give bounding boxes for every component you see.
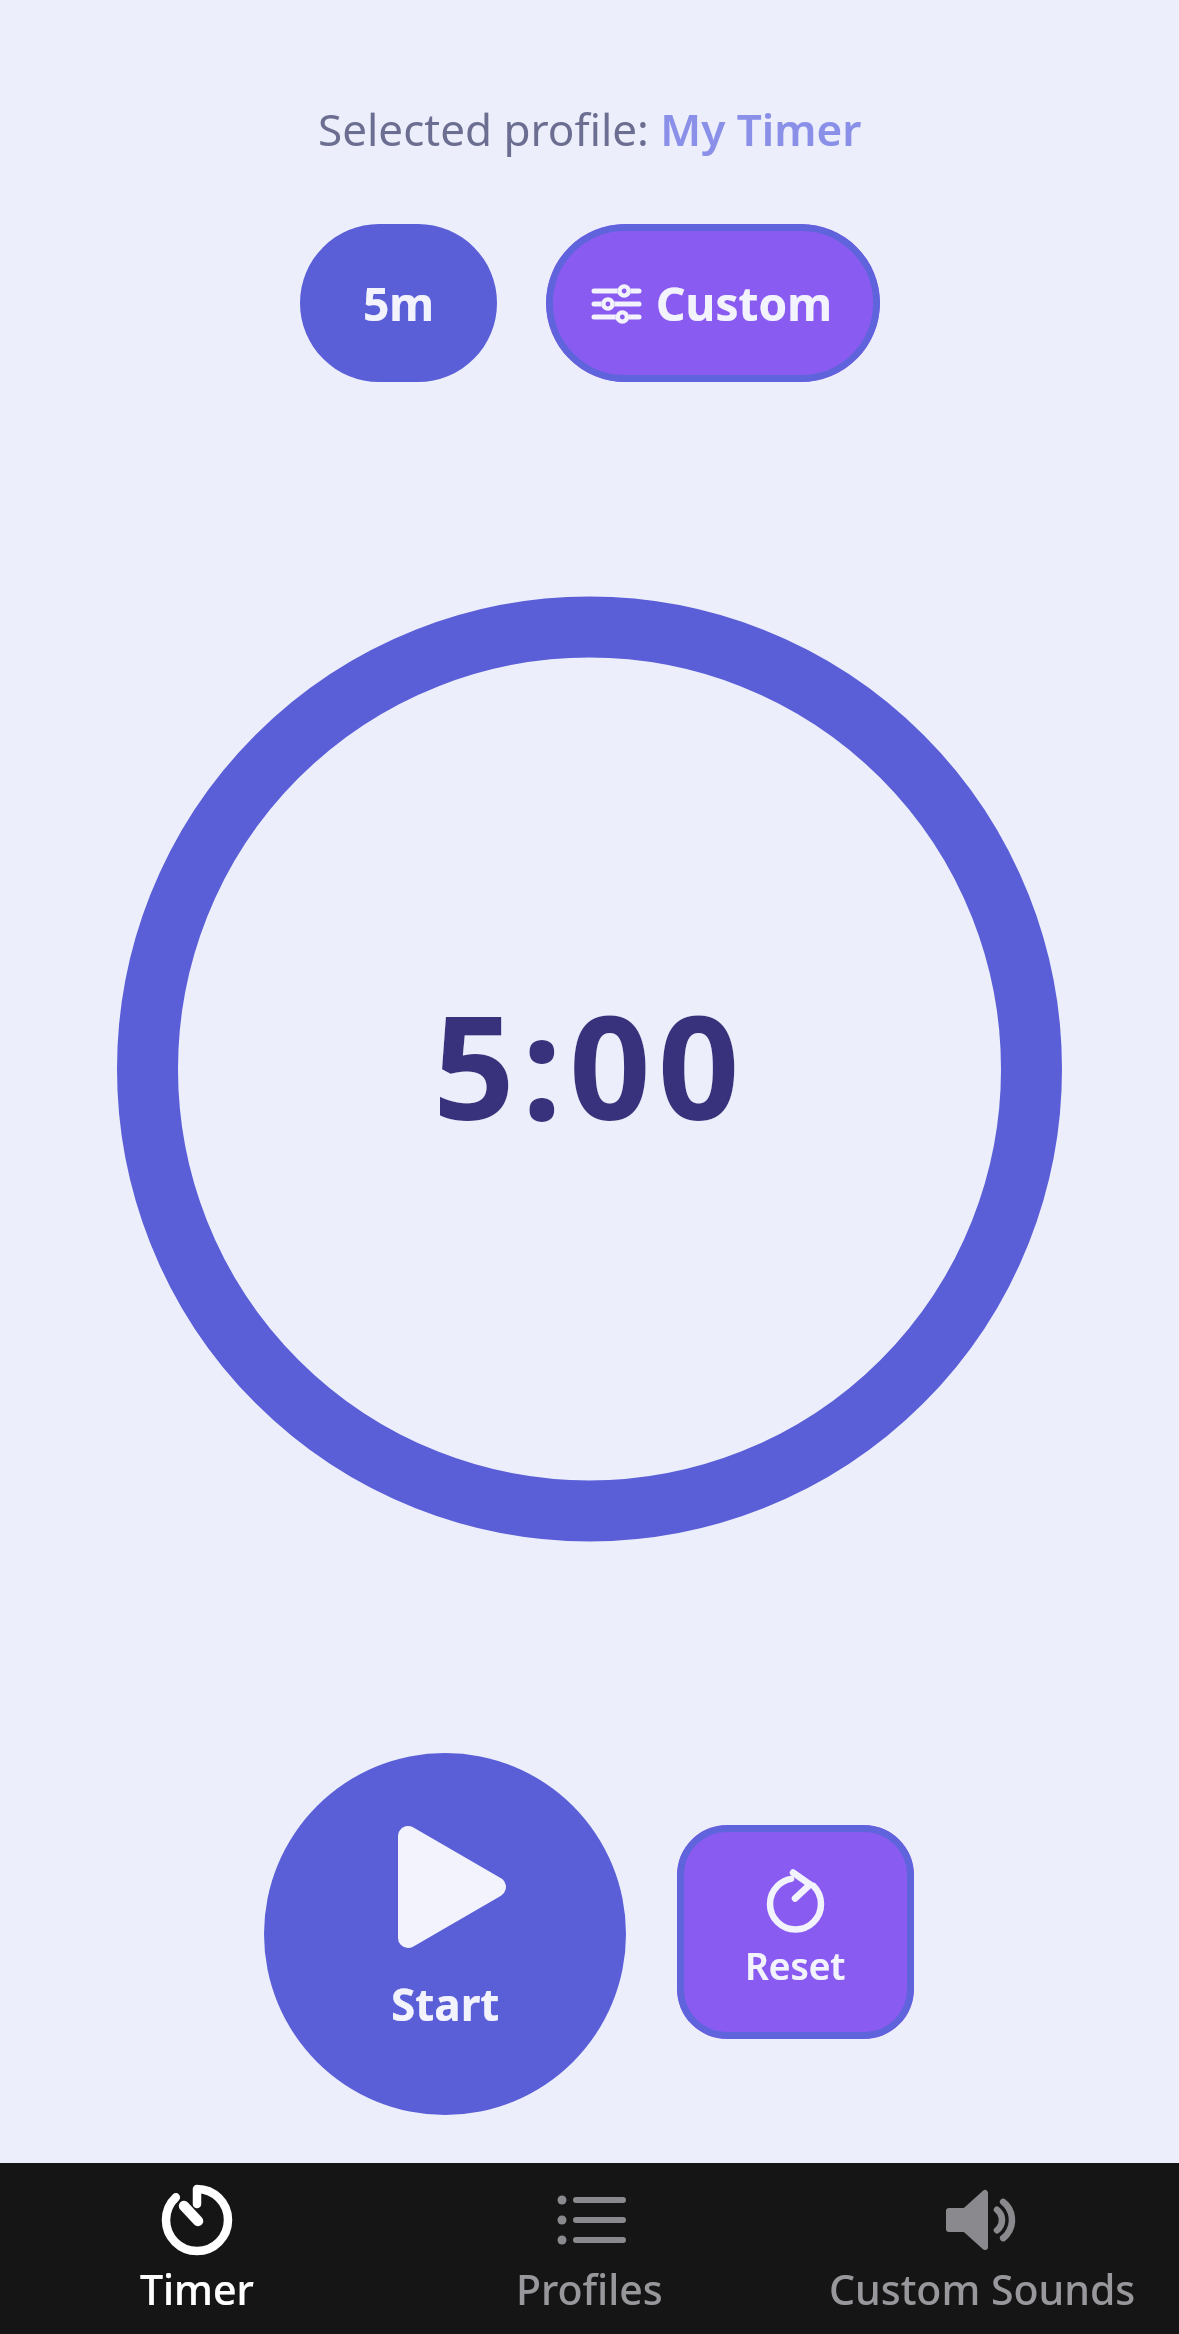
button[interactable]: Timer: [0, 2163, 393, 2334]
staticText: 5m: [363, 272, 435, 335]
button[interactable]: 5m: [300, 224, 497, 382]
staticText: Start: [391, 1974, 500, 2026]
staticText: Profiles: [516, 2261, 663, 2317]
staticText: Reset: [745, 1940, 846, 1990]
button[interactable]: Start: [264, 1753, 626, 2115]
button[interactable]: Custom Sounds: [786, 2163, 1179, 2334]
button[interactable]: Custom: [546, 224, 880, 382]
staticText: Selected profile: My Timer: [318, 99, 862, 159]
button[interactable]: Profiles: [393, 2163, 786, 2334]
staticText: Custom: [656, 272, 833, 335]
staticText: Custom Sounds: [829, 2261, 1136, 2317]
staticText: Timer: [140, 2261, 254, 2317]
button[interactable]: Reset: [677, 1825, 914, 2039]
staticText: 5:00: [433, 967, 747, 1162]
